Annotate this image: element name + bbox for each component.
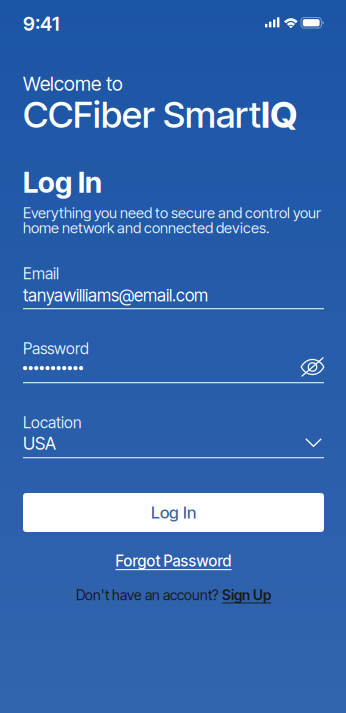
staticText: Log In: [23, 165, 102, 199]
button[interactable]: Log In: [23, 493, 324, 532]
staticText: Everything you need to secure and contro…: [23, 204, 321, 237]
staticText: Welcome to: [23, 72, 123, 95]
button[interactable]: Show password: [300, 356, 325, 378]
staticText: tanyawilliams@email.com: [23, 285, 208, 306]
staticText: Log In: [151, 502, 196, 523]
staticText: Location: [23, 413, 81, 432]
staticText: 9:41: [23, 12, 59, 35]
button[interactable]: Forgot Password: [23, 551, 324, 571]
staticText: Don't have an account? Sign Up: [76, 587, 271, 603]
staticText: Password: [23, 339, 89, 358]
staticText: USA: [23, 433, 56, 454]
staticText: CCFiber SmartIQ: [23, 93, 297, 136]
staticText: Email: [23, 264, 59, 283]
button[interactable]: Choose location: [305, 438, 322, 447]
button[interactable]: Don't have an account? Sign Up: [23, 585, 324, 605]
staticText: Forgot Password: [115, 552, 231, 570]
